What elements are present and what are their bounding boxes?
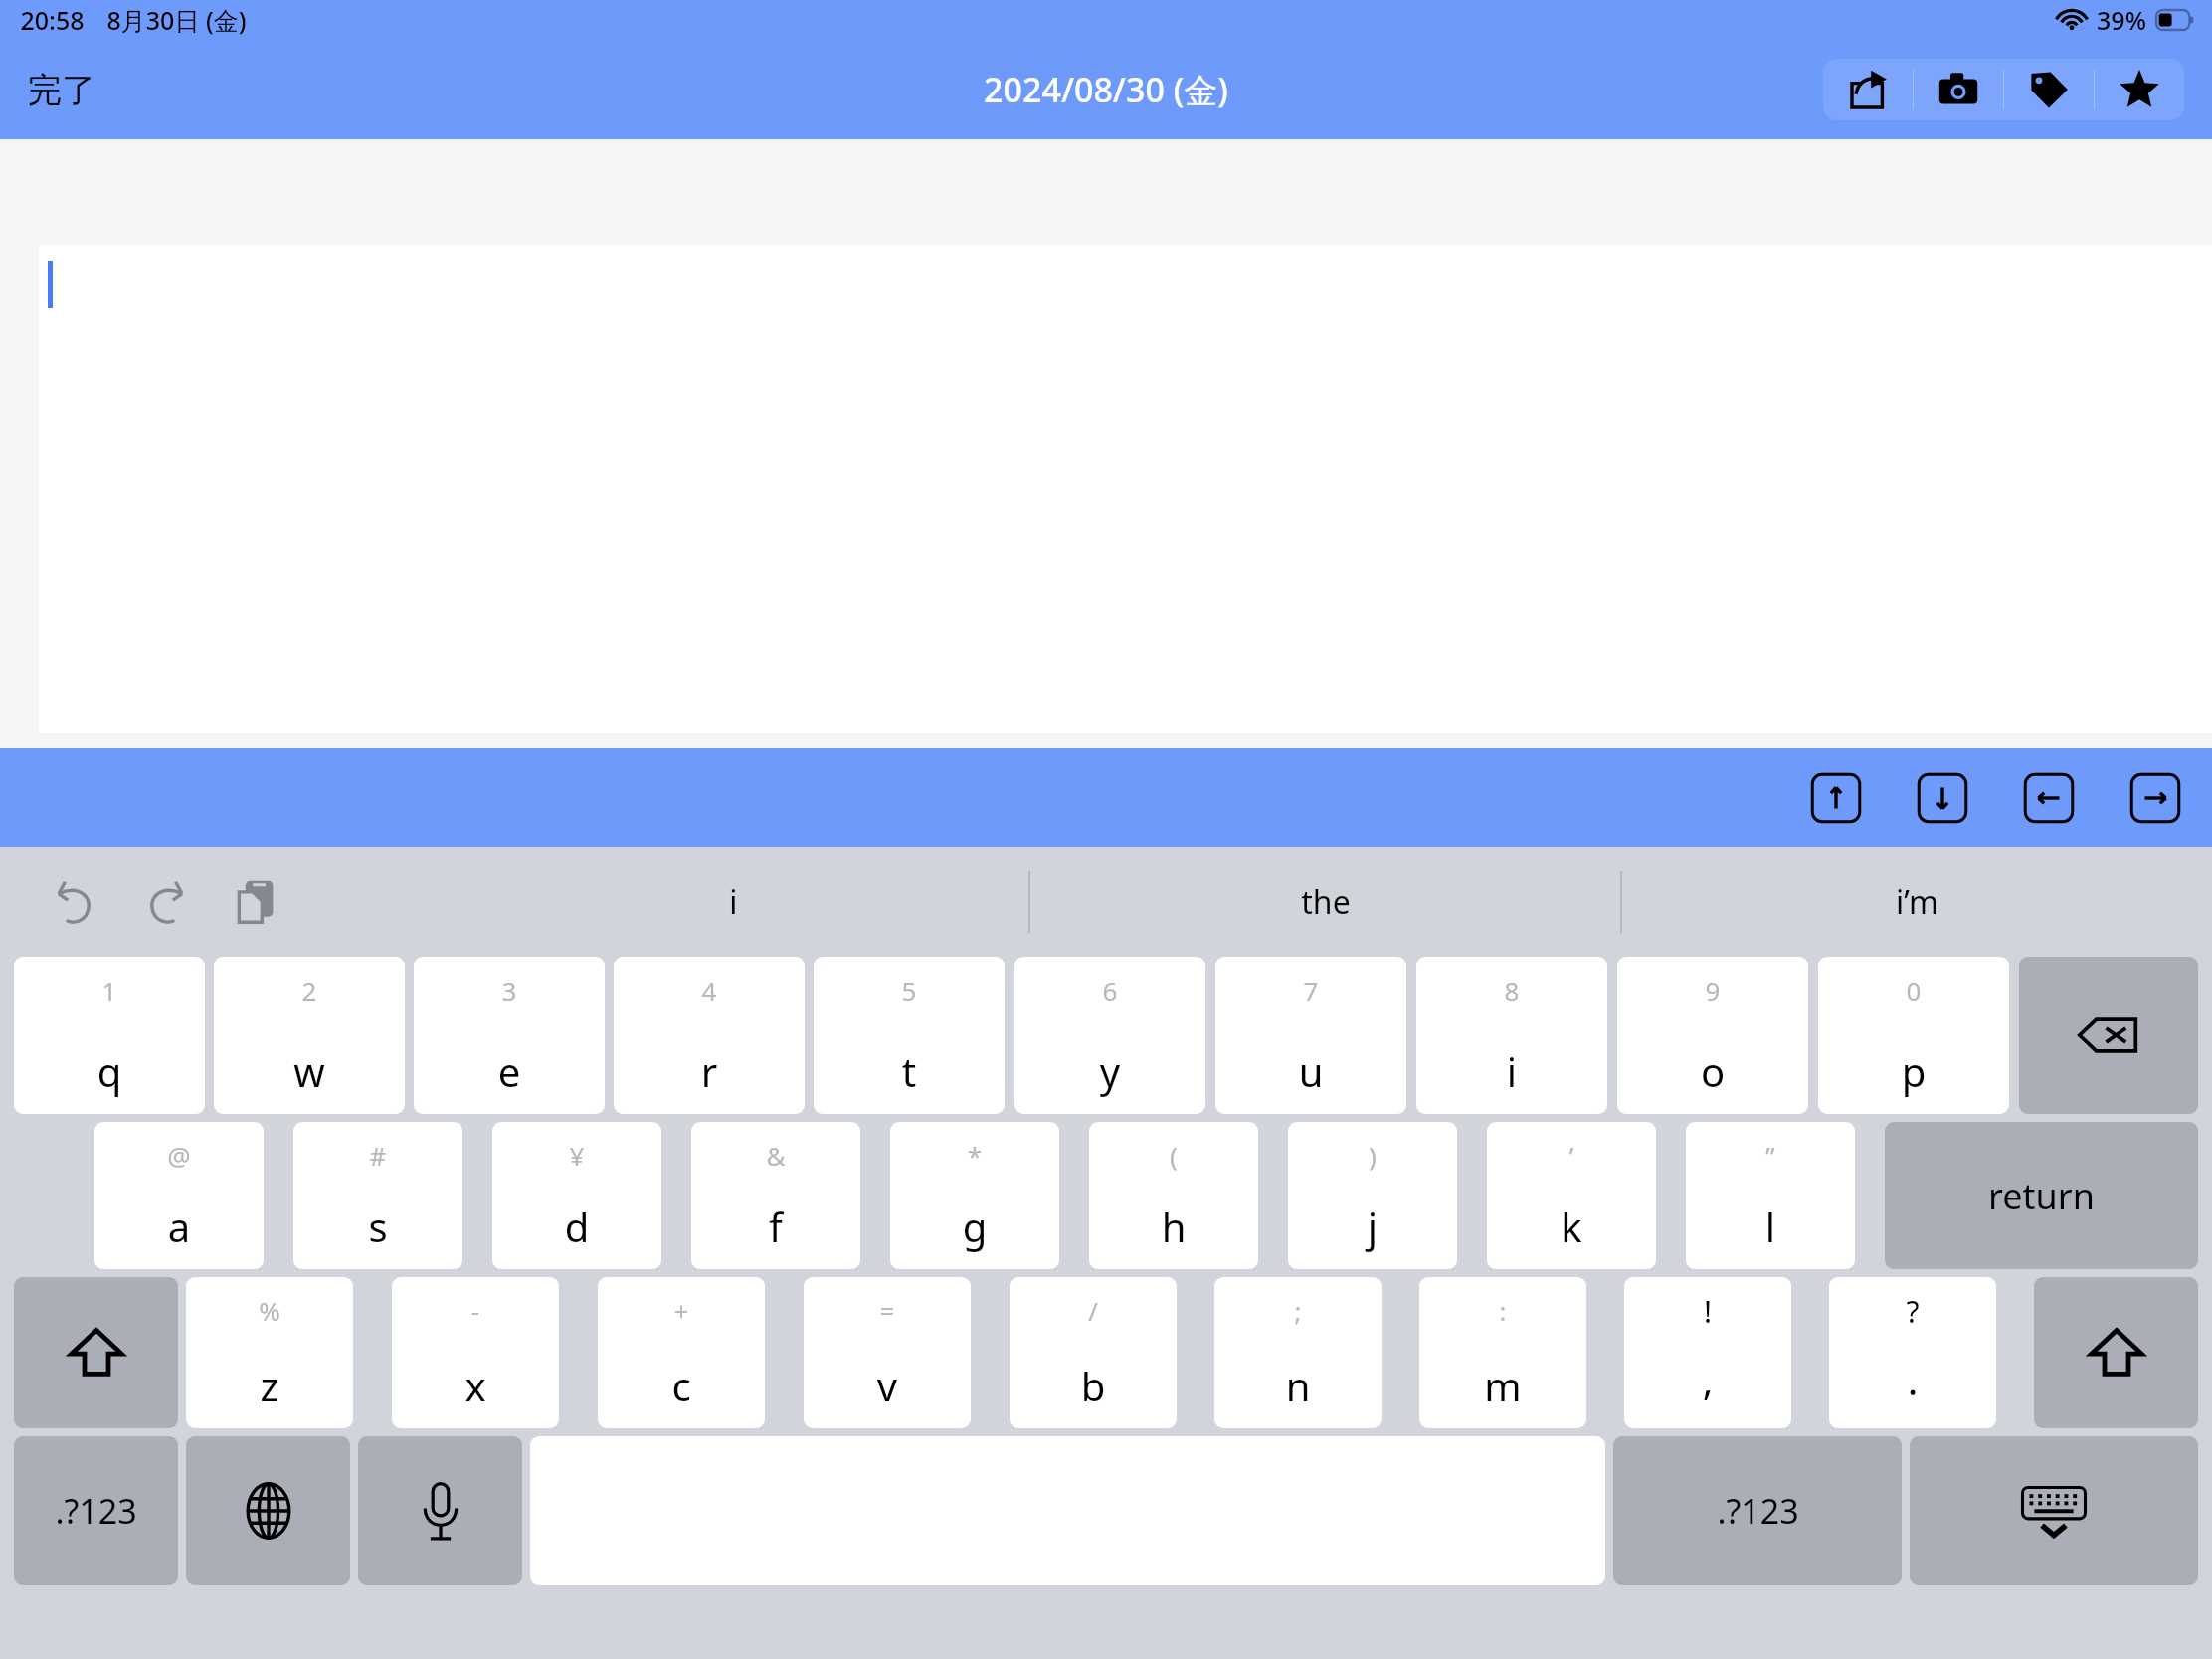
button[interactable]: : — [1419, 1277, 1586, 1428]
button[interactable]: i — [438, 847, 1028, 957]
button[interactable]: Paste — [219, 866, 290, 938]
staticText: ¥ — [492, 1138, 661, 1173]
button[interactable]: the — [1030, 847, 1620, 957]
button[interactable]: @ — [94, 1122, 264, 1269]
staticText: ? — [1829, 1291, 1996, 1332]
staticText: x — [392, 1359, 559, 1412]
button[interactable]: ’ — [1487, 1122, 1656, 1269]
staticText: 8月30日 (金) — [106, 3, 247, 37]
staticText: 1 — [14, 973, 205, 1008]
staticText: ( — [1089, 1138, 1258, 1173]
button[interactable]: ¥ — [492, 1122, 661, 1269]
button[interactable]: ; — [1214, 1277, 1382, 1428]
button[interactable]: + — [598, 1277, 765, 1428]
button[interactable]: 2 — [214, 957, 405, 1114]
staticText: % — [186, 1293, 353, 1328]
button[interactable]: Tag — [2004, 59, 2094, 120]
button[interactable]: .?123 — [1613, 1436, 1902, 1585]
button[interactable]: i’m — [1622, 847, 2212, 957]
staticText: u — [1215, 1044, 1406, 1098]
staticText: q — [14, 1044, 205, 1098]
staticText: e — [414, 1044, 605, 1098]
button[interactable]: ? — [1829, 1277, 1996, 1428]
staticText: 7 — [1215, 973, 1406, 1008]
button[interactable]: 8 — [1416, 957, 1607, 1114]
staticText: @ — [94, 1138, 264, 1173]
staticText: 2 — [214, 973, 405, 1008]
staticText: 0 — [1818, 973, 2009, 1008]
staticText: k — [1487, 1199, 1656, 1253]
staticText: y — [1014, 1044, 1205, 1098]
staticText: / — [1010, 1293, 1177, 1328]
button[interactable]: ! — [1624, 1277, 1791, 1428]
button[interactable]: Dictation — [358, 1436, 522, 1585]
staticText: 8 — [1416, 973, 1607, 1008]
staticText: 4 — [614, 973, 805, 1008]
button[interactable]: Hide keyboard — [1910, 1436, 2198, 1585]
button[interactable]: Backspace — [2019, 957, 2198, 1114]
staticText: z — [186, 1359, 353, 1412]
button[interactable]: 7 — [1215, 957, 1406, 1114]
staticText: r — [614, 1044, 805, 1098]
button[interactable]: Undo — [40, 866, 111, 938]
staticText: , — [1624, 1353, 1791, 1406]
button[interactable]: ) — [1288, 1122, 1457, 1269]
staticText: ! — [1624, 1291, 1791, 1332]
button[interactable]: Shift right — [2034, 1277, 2198, 1428]
button[interactable]: Space — [530, 1436, 1605, 1585]
staticText: i’m — [1896, 880, 1938, 924]
button[interactable]: 0 — [1818, 957, 2009, 1114]
staticText: # — [293, 1138, 462, 1173]
button[interactable]: ” — [1686, 1122, 1855, 1269]
button[interactable]: # — [293, 1122, 462, 1269]
button[interactable]: 5 — [814, 957, 1005, 1114]
button[interactable]: Favorite — [2095, 59, 2184, 120]
staticText: ; — [1214, 1293, 1382, 1328]
staticText: d — [492, 1199, 661, 1253]
staticText: & — [691, 1138, 860, 1173]
button[interactable]: Share — [1823, 59, 1913, 120]
staticText: 20:58 — [20, 3, 85, 37]
staticText: i — [1416, 1044, 1607, 1098]
button[interactable]: ( — [1089, 1122, 1258, 1269]
staticText: h — [1089, 1199, 1258, 1253]
staticText: - — [392, 1293, 559, 1328]
button[interactable]: 9 — [1617, 957, 1808, 1114]
button[interactable]: Move left — [2022, 771, 2076, 825]
button[interactable]: = — [804, 1277, 971, 1428]
staticText: . — [1829, 1353, 1996, 1406]
button[interactable]: Shift — [14, 1277, 178, 1428]
button[interactable]: - — [392, 1277, 559, 1428]
button[interactable]: 完了 — [12, 61, 111, 119]
staticText: = — [804, 1293, 971, 1328]
button[interactable]: Change keyboard — [186, 1436, 350, 1585]
button[interactable]: Redo — [129, 866, 201, 938]
button[interactable]: & — [691, 1122, 860, 1269]
button[interactable]: .?123 — [14, 1436, 178, 1585]
staticText: j — [1288, 1199, 1457, 1253]
staticText: 完了 — [28, 69, 95, 111]
staticText: 5 — [814, 973, 1005, 1008]
staticText: g — [890, 1199, 1059, 1253]
button[interactable]: Move right — [2128, 771, 2182, 825]
button[interactable]: Camera — [1914, 59, 2003, 120]
button[interactable]: 6 — [1014, 957, 1205, 1114]
staticText: * — [890, 1138, 1059, 1173]
button[interactable]: return — [1885, 1122, 2198, 1269]
button[interactable]: Move up — [1809, 771, 1863, 825]
button[interactable]: 4 — [614, 957, 805, 1114]
staticText: + — [598, 1293, 765, 1328]
staticText: .?123 — [55, 1488, 137, 1534]
staticText: 2024/08/30 (金) — [984, 67, 1228, 112]
button[interactable]: % — [186, 1277, 353, 1428]
staticText: c — [598, 1359, 765, 1412]
staticText: ’ — [1487, 1138, 1656, 1173]
button[interactable]: * — [890, 1122, 1059, 1269]
staticText: i — [729, 880, 738, 924]
button[interactable]: Move down — [1916, 771, 1969, 825]
button[interactable]: / — [1010, 1277, 1177, 1428]
staticText: f — [691, 1199, 860, 1253]
button[interactable]: 3 — [414, 957, 605, 1114]
button[interactable]: 1 — [14, 957, 205, 1114]
